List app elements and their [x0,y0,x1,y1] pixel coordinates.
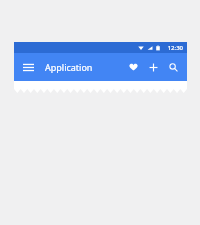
button[interactable]: Search [164,58,182,76]
staticText: 12:30 [167,44,183,52]
button[interactable]: Add [144,58,162,76]
button[interactable]: Open navigation drawer [19,58,37,76]
button[interactable]: Favorite [124,58,142,76]
staticText: Application [45,61,93,73]
